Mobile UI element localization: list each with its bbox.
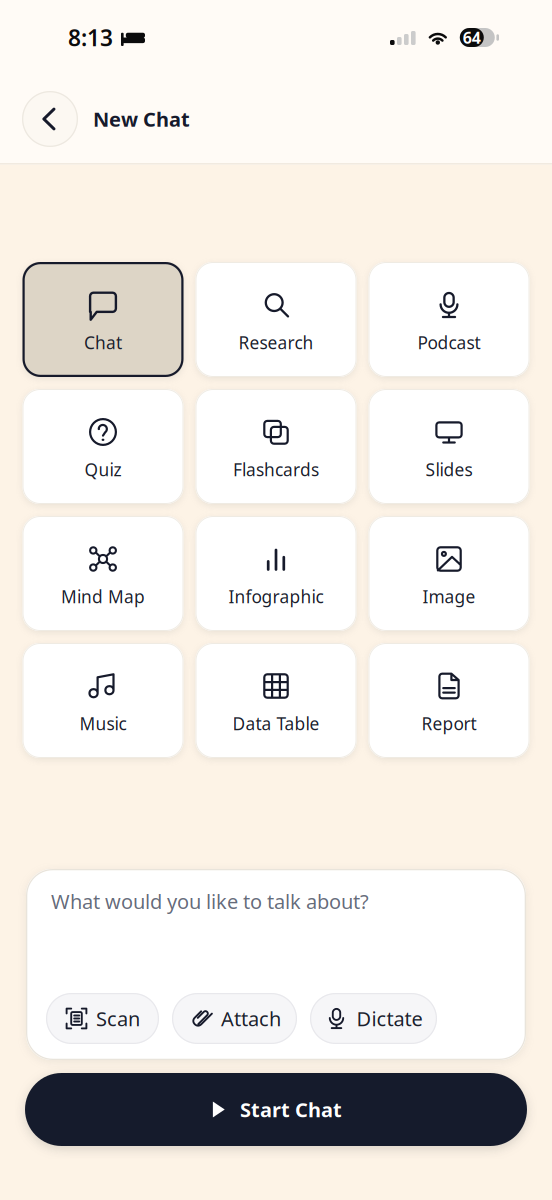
button[interactable]: Scan <box>46 993 159 1044</box>
button[interactable]: Chat <box>22 262 183 377</box>
button[interactable]: Attach <box>172 993 297 1044</box>
button[interactable]: Music <box>22 643 183 758</box>
button[interactable]: Mind Map <box>22 516 183 631</box>
button[interactable]: Image <box>368 516 529 631</box>
button[interactable]: Podcast <box>368 262 529 377</box>
button[interactable]: Research <box>195 262 356 377</box>
button[interactable]: Infographic <box>195 516 356 631</box>
staticText: Image <box>422 585 475 608</box>
staticText: Report <box>421 712 476 735</box>
staticText: 64 <box>463 27 481 48</box>
staticText: Data Table <box>232 712 319 735</box>
button[interactable]: Report <box>368 643 529 758</box>
staticText: Start Chat <box>240 1096 342 1123</box>
staticText: New Chat <box>93 106 190 132</box>
button[interactable]: Dictate <box>310 993 437 1044</box>
button[interactable]: Quiz <box>22 389 183 504</box>
button[interactable]: Flashcards <box>195 389 356 504</box>
staticText: Music <box>79 712 126 735</box>
staticText: Podcast <box>417 331 480 354</box>
staticText: Slides <box>425 458 472 481</box>
staticText: 8:13 <box>68 22 113 52</box>
button[interactable]: Back <box>22 91 78 147</box>
button[interactable]: Slides <box>368 389 529 504</box>
staticText: Flashcards <box>233 458 319 481</box>
button[interactable]: Start Chat <box>25 1073 527 1146</box>
staticText: Infographic <box>228 585 323 608</box>
staticText: Attach <box>221 1005 281 1032</box>
staticText: What would you like to talk about? <box>51 888 369 915</box>
button[interactable]: Data Table <box>195 643 356 758</box>
staticText: Chat <box>84 331 122 354</box>
staticText: Mind Map <box>61 585 145 608</box>
staticText: Quiz <box>84 458 121 481</box>
staticText: Dictate <box>356 1005 422 1032</box>
staticText: Scan <box>96 1005 140 1032</box>
staticText: Research <box>238 331 313 354</box>
